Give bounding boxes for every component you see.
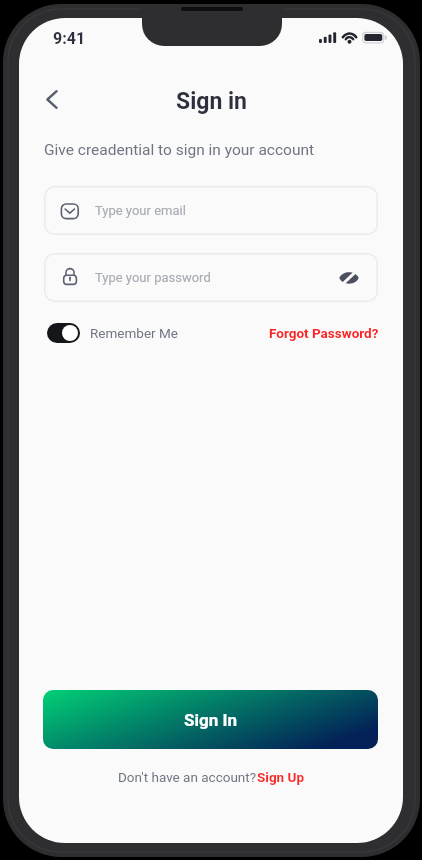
staticText: Forgot Password? [269,325,379,341]
staticText: Remember Me [90,325,178,341]
button[interactable]: Type your email [44,186,378,235]
staticText: 9:41 [53,29,86,48]
button[interactable]: Back [32,77,76,121]
staticText: Sign in [176,88,247,115]
button[interactable]: Sign In [43,690,378,749]
staticText: Sign Up [257,769,304,785]
staticText: Type your password [95,270,211,285]
button[interactable]: Sign Up [257,769,304,785]
button[interactable]: Type your password [44,253,378,302]
staticText: Give creadential to sign in your account [44,141,315,159]
staticText: Type your email [95,203,186,218]
button[interactable]: Remember Me [47,323,178,343]
staticText: Sign In [184,710,237,730]
button[interactable]: Forgot Password? [269,325,379,341]
button[interactable]: Show password [329,258,369,298]
staticText: Don't have an account? [118,769,257,785]
